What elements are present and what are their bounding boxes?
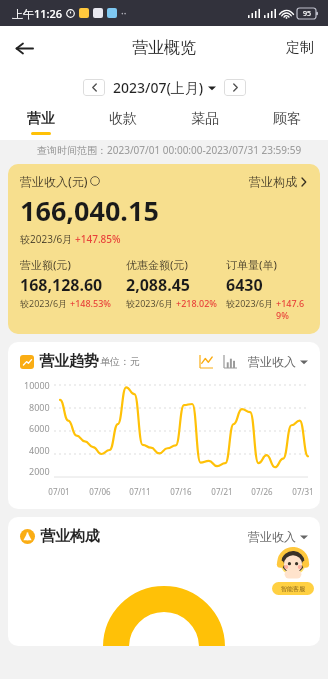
staticText: 查询时间范围：2023/07/01 00:00:00-2023/07/31 23…: [37, 143, 302, 157]
button[interactable]: 菜品: [164, 104, 246, 140]
staticText: 较2023/6月: [226, 297, 276, 309]
staticText: 166,040.15: [20, 192, 159, 229]
button[interactable]: 定制: [280, 33, 320, 63]
staticText: 07/21: [211, 486, 233, 497]
staticText: 收款: [109, 110, 137, 128]
staticText: 营业构成: [40, 527, 100, 546]
staticText: +147.69%: [276, 297, 308, 321]
staticText: +148.53%: [70, 297, 112, 309]
staticText: 定制: [286, 39, 314, 57]
staticText: 168,128.60: [20, 274, 103, 296]
button[interactable]: 营业收入: [248, 354, 308, 369]
button[interactable]: Line chart: [199, 354, 214, 369]
staticText: 07/01: [48, 486, 70, 497]
button[interactable]: 营业: [0, 104, 82, 140]
button[interactable]: Bar chart: [223, 354, 238, 369]
staticText: 2000: [29, 465, 50, 477]
staticText: 6430: [226, 274, 263, 296]
staticText: 2,088.45: [126, 274, 190, 296]
staticText: 营业收入: [248, 529, 296, 544]
button[interactable]: Next month: [224, 79, 246, 96]
staticText: 上午11:26: [12, 6, 63, 21]
staticText: 营业概览: [132, 38, 196, 58]
staticText: 07/06: [89, 486, 111, 497]
staticText: 单位：元: [100, 355, 140, 368]
staticText: 6000: [29, 422, 50, 434]
staticText: 营业收入: [248, 354, 296, 369]
button[interactable]: 顾客: [246, 104, 328, 140]
staticText: 优惠金额(元): [126, 257, 188, 272]
staticText: +218.02%: [176, 297, 218, 309]
staticText: 较2023/6月: [20, 297, 70, 309]
staticText: 营业构成: [249, 174, 297, 189]
staticText: 2023/07(上月): [113, 78, 204, 97]
button[interactable]: 2023/07(上月): [113, 78, 216, 97]
staticText: 顾客: [273, 110, 301, 128]
staticText: 营业: [27, 110, 55, 128]
staticText: ··: [121, 6, 127, 20]
staticText: 07/26: [251, 486, 273, 497]
staticText: 较2023/6月: [126, 297, 176, 309]
staticText: 4000: [29, 444, 50, 456]
staticText: 营业额(元): [20, 257, 71, 272]
staticText: 95: [303, 9, 312, 19]
staticText: 07/31: [292, 486, 314, 497]
button[interactable]: Back: [6, 30, 42, 66]
button[interactable]: 收款: [82, 104, 164, 140]
staticText: 8000: [29, 401, 50, 413]
button[interactable]: 营业收入: [248, 529, 308, 544]
button[interactable]: 营业构成: [249, 174, 308, 189]
staticText: 07/11: [129, 486, 151, 497]
staticText: 较2023/6月: [20, 232, 75, 246]
staticText: 智能客服: [281, 585, 305, 593]
button[interactable]: Previous month: [83, 79, 105, 96]
staticText: 07/16: [170, 486, 192, 497]
staticText: +147.85%: [75, 232, 121, 246]
staticText: 营业收入(元): [20, 173, 88, 189]
staticText: 订单量(单): [226, 257, 277, 272]
staticText: 营业趋势: [39, 352, 99, 371]
staticText: 菜品: [191, 110, 219, 128]
button[interactable]: 智能客服: [272, 549, 314, 595]
staticText: 10000: [24, 379, 50, 391]
